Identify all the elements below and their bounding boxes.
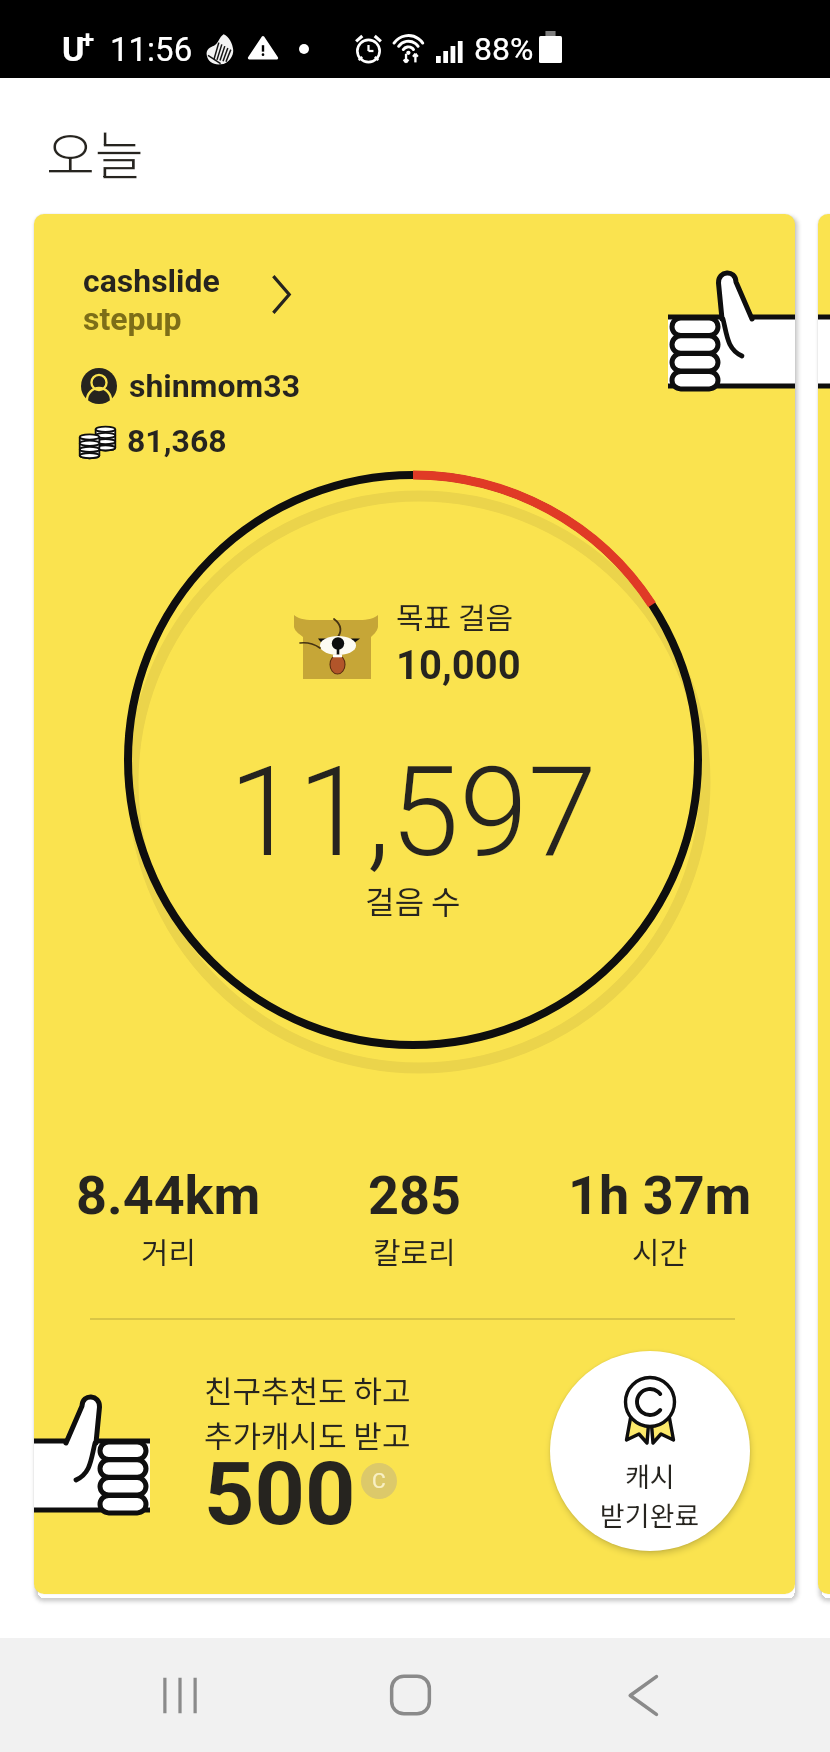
staticText: 11:56 [110,30,193,69]
button[interactable]: Back [585,1638,701,1752]
staticText: 목표 걸음 [396,594,514,637]
staticText: 받기완료 [600,1495,700,1534]
staticText: + [81,26,95,54]
staticText: 285 [368,1164,461,1227]
staticText: 11,597 [229,740,597,885]
staticText: 캐시 [625,1456,675,1495]
staticText: 추가캐시도 받고 [204,1412,411,1457]
button[interactable]: cashslide [34,214,795,1594]
staticText: 친구추천도 하고 [204,1367,411,1412]
button[interactable]: Home [352,1638,468,1752]
staticText: 1h 37m [568,1164,752,1227]
staticText: cashslide [83,262,220,300]
staticText: 500 [204,1442,356,1545]
staticText: 8.44km [76,1164,261,1227]
button[interactable]: 캐시 [550,1351,750,1551]
staticText: 시간 [632,1229,688,1272]
staticText: 88% [474,30,534,68]
staticText: 81,368 [127,422,227,460]
staticText: 오늘 [46,114,144,191]
staticText: shinmom33 [129,367,300,405]
staticText: 거리 [141,1229,197,1272]
staticText: 칼로리 [373,1229,456,1272]
button[interactable] [818,214,830,1594]
button[interactable]: Recent apps [122,1638,238,1752]
staticText: 10,000 [396,642,521,689]
staticText: 걸음 수 [365,877,461,923]
staticText: stepup [83,300,182,338]
staticText: C [372,1469,386,1494]
staticText: U [62,29,85,69]
